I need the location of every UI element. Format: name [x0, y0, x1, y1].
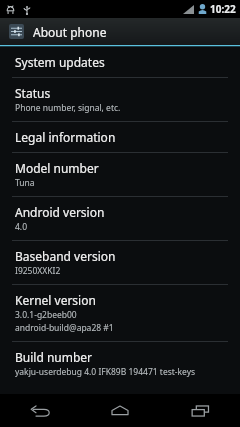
staticText: 3.0.1-g2beeb00 [15, 309, 77, 321]
button[interactable]: Baseband version [0, 241, 240, 284]
staticText: About phone [33, 24, 107, 40]
button[interactable]: Status [0, 78, 240, 121]
staticText: Tuna [15, 177, 35, 189]
staticText: Kernel version [15, 292, 96, 308]
staticText: Build number [15, 349, 93, 365]
button[interactable]: About phone [0, 18, 240, 45]
staticText: Status [15, 85, 51, 101]
button[interactable]: Build number [0, 342, 240, 385]
button[interactable]: Android version [0, 197, 240, 240]
staticText: android-build@apa28 #1 [15, 322, 114, 334]
staticText: yakju-userdebug 4.0 IFK89B 194471 test-k… [15, 366, 196, 378]
button[interactable]: Model number [0, 153, 240, 196]
button[interactable]: Back [0, 394, 80, 427]
staticText: I9250XXKI2 [15, 265, 61, 277]
staticText: Android version [15, 204, 105, 220]
staticText: Baseband version [15, 248, 116, 264]
staticText: Model number [15, 160, 99, 176]
button[interactable]: Legal information [0, 122, 240, 152]
button[interactable]: Kernel version [0, 285, 240, 341]
button[interactable]: System updates [0, 47, 240, 77]
staticText: Legal information [15, 129, 116, 145]
staticText: Phone number, signal, etc. [15, 102, 121, 114]
button[interactable]: Home [80, 394, 160, 427]
staticText: 4.0 [15, 221, 28, 233]
staticText: System updates [15, 54, 105, 70]
staticText: 10:22 [210, 2, 236, 16]
button[interactable]: Recent apps [160, 394, 240, 427]
